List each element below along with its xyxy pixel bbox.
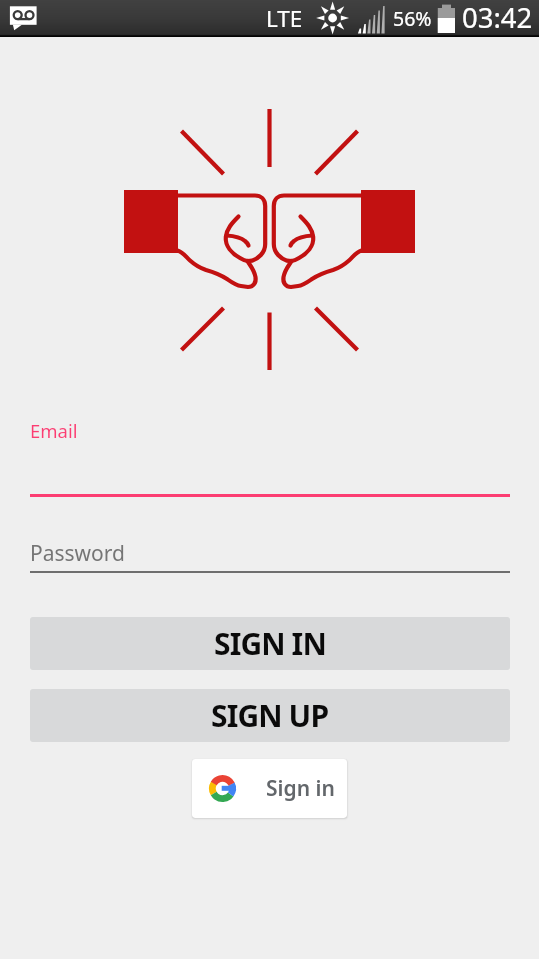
- staticText: SIGN UP: [211, 695, 329, 736]
- button[interactable]: SIGN UP: [30, 689, 510, 742]
- staticText: Email: [30, 418, 78, 443]
- button[interactable]: Email: [30, 414, 510, 497]
- staticText: 03:42: [462, 0, 533, 36]
- staticText: Password: [30, 539, 125, 568]
- staticText: Sign in: [266, 774, 335, 803]
- button[interactable]: SIGN IN: [30, 617, 510, 670]
- button[interactable]: Sign in: [192, 759, 347, 818]
- staticText: SIGN IN: [214, 623, 326, 664]
- button[interactable]: Password: [30, 538, 510, 573]
- staticText: 56%: [393, 5, 432, 32]
- other: Fist bump logo: [0, 105, 539, 395]
- staticText: LTE: [266, 3, 303, 34]
